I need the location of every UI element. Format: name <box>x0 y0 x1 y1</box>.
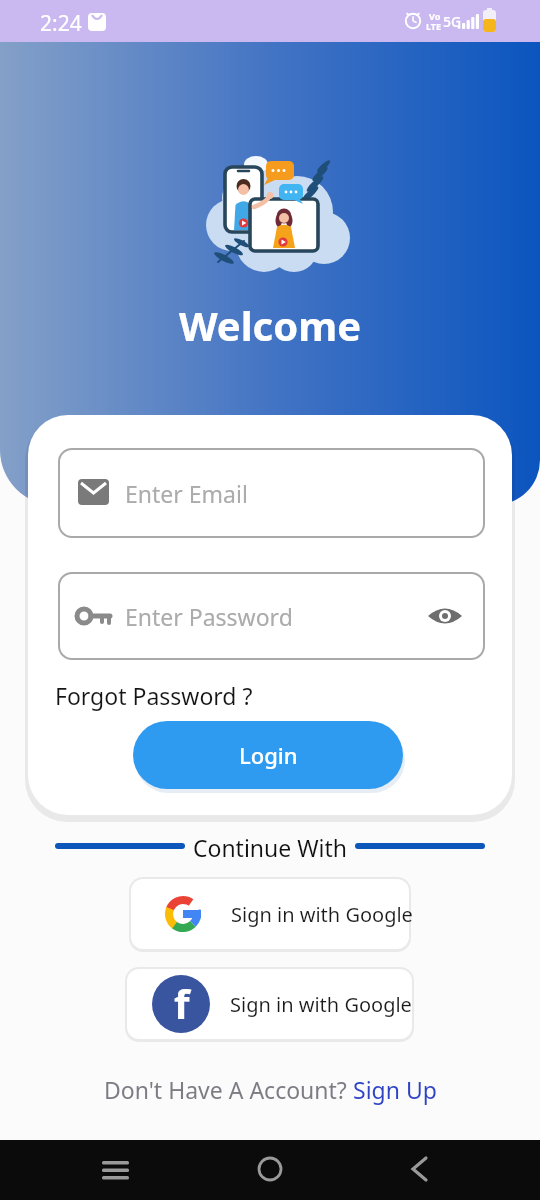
staticText: Enter Email <box>125 478 248 509</box>
button[interactable]: f <box>127 969 412 1039</box>
staticText: Sign in with Google <box>230 991 412 1018</box>
staticText: 5G <box>443 12 462 31</box>
staticText: Welcome <box>0 298 540 352</box>
staticText: LTE <box>426 20 442 32</box>
staticText: Continue With <box>0 832 540 863</box>
button[interactable] <box>240 1140 300 1200</box>
button[interactable] <box>85 1140 145 1200</box>
staticText: 2:24 <box>40 9 82 38</box>
button[interactable]: Sign in with Google <box>131 879 409 949</box>
button[interactable]: Enter Password <box>58 572 485 660</box>
staticText: f <box>174 976 190 1030</box>
button[interactable]: Forgot Password ? <box>55 680 253 711</box>
button[interactable]: Login <box>133 721 403 789</box>
staticText: Don't Have A Account? <box>104 1074 353 1105</box>
staticText: Sign in with Google <box>231 901 413 928</box>
button[interactable] <box>395 1140 455 1200</box>
staticText: Vo <box>429 10 441 22</box>
button[interactable]: Sign Up <box>353 1074 437 1105</box>
button[interactable]: Enter Email <box>58 448 485 538</box>
staticText: Login <box>239 740 298 770</box>
staticText: Enter Password <box>125 601 293 632</box>
